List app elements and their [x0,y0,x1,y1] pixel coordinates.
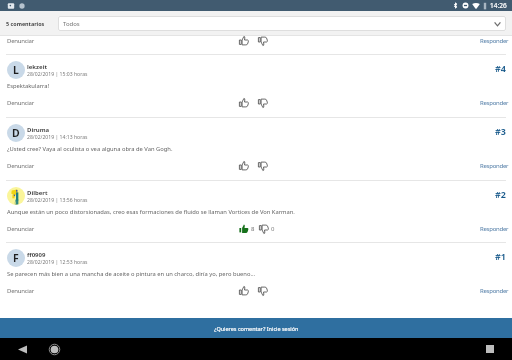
staticText: 0 [271,225,275,233]
button[interactable]: Responder [480,162,512,170]
button[interactable]: Responder [480,287,512,295]
staticText: #2 [495,188,506,200]
staticText: 28/02/2019 | 12:53 horas [27,259,88,266]
staticText: F [13,251,19,265]
button[interactable]: Responder [480,225,512,233]
staticText: ¿Quieres comentar? Inicie sesión [214,325,299,332]
button[interactable]: Denunciar [0,37,34,45]
staticText: #1 [495,250,506,262]
staticText: ¿Usted cree? Vaya al oculista o vea algu… [7,145,173,153]
staticText: ff0909 [27,251,46,259]
staticText: 28/02/2019 | 14:13 horas [27,134,88,141]
staticText: 5 comentarios [6,20,45,27]
staticText: Dilbert [27,189,48,197]
button[interactable]: Responder [480,99,512,107]
button[interactable]: Me gusta [239,224,249,234]
staticText: 8 [251,225,255,233]
staticText: D [12,126,20,140]
staticText: #3 [495,125,506,137]
staticText: 28/02/2019 | 13:56 horas [27,197,88,204]
button[interactable]: Home [45,340,63,358]
staticText: #4 [495,62,506,74]
button[interactable]: Me gusta [239,286,249,296]
staticText: Aunque están un poco distorsionadas, cre… [7,208,295,216]
button[interactable]: Denunciar [0,225,34,233]
button[interactable]: No me gusta [258,161,268,171]
button[interactable]: Back [13,340,31,358]
staticText: L [13,63,19,77]
button[interactable]: Denunciar [0,162,34,170]
button[interactable]: No me gusta [258,98,268,108]
staticText: Se parecen más bien a una mancha de acei… [7,270,256,278]
staticText: lekzeit [27,63,48,71]
staticText: Espektakularra! [7,82,50,90]
button[interactable]: Denunciar [0,99,34,107]
button[interactable]: Me gusta [239,36,249,46]
staticText: 28/02/2019 | 15:03 horas [27,71,88,78]
button[interactable]: Me gusta [239,98,249,108]
staticText: Diruma [27,126,50,134]
button[interactable]: Responder [480,37,512,45]
staticText: 14:26 [490,1,507,10]
button[interactable]: Denunciar [0,287,34,295]
staticText: Todos [63,20,80,28]
button[interactable]: Recents [481,340,499,358]
button[interactable]: Todos [58,16,506,31]
button[interactable]: No me gusta [258,36,268,46]
button[interactable]: No me gusta [259,224,269,234]
button[interactable]: ¿Quieres comentar? Inicie sesión [0,318,512,338]
button[interactable]: No me gusta [258,286,268,296]
button[interactable]: Me gusta [239,161,249,171]
